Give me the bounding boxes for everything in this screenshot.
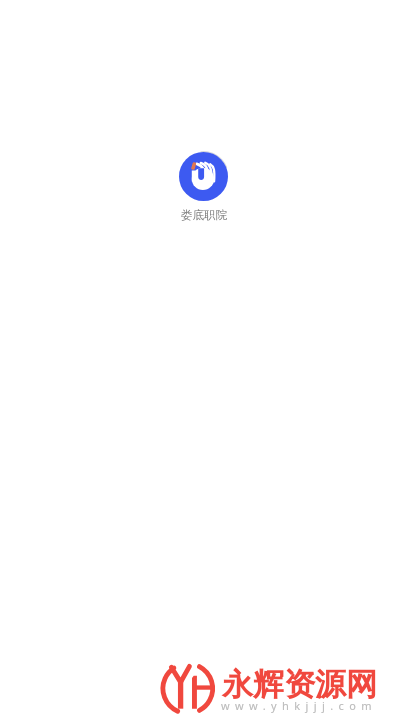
- staticText: 娄底职院: [181, 208, 227, 222]
- staticText: 永辉资源网: [222, 665, 377, 704]
- other: App icon: [177, 150, 230, 203]
- staticText: www.yhkjjj.com: [221, 698, 378, 713]
